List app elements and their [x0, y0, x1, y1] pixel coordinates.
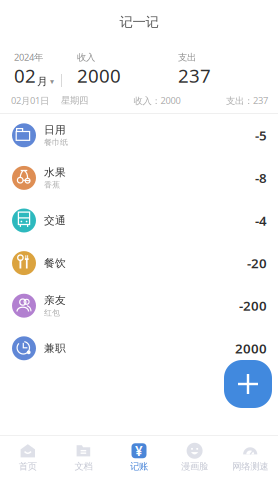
- staticText: 星期四: [61, 95, 88, 106]
- staticText: 红包: [44, 308, 60, 318]
- staticText: ¥: [135, 442, 143, 460]
- staticText: 237: [178, 63, 211, 88]
- staticText: 餐饮: [44, 256, 66, 270]
- staticText: -4: [255, 212, 267, 229]
- staticText: 02: [14, 63, 36, 88]
- staticText: 文档: [74, 461, 92, 472]
- button[interactable]: 餐饮: [0, 242, 278, 284]
- button[interactable]: 文档: [56, 435, 111, 480]
- staticText: -200: [239, 297, 267, 314]
- button[interactable]: 交通: [0, 199, 278, 242]
- button[interactable]: 亲友: [0, 284, 278, 327]
- staticText: 漫画脸: [181, 461, 208, 472]
- staticText: -20: [247, 254, 267, 272]
- staticText: 2024年: [14, 51, 43, 63]
- button[interactable]: 水果: [0, 157, 278, 199]
- staticText: 月: [37, 75, 48, 88]
- staticText: -5: [255, 126, 267, 144]
- staticText: 支出：237: [226, 94, 268, 107]
- button[interactable]: 漫画脸: [167, 435, 222, 480]
- staticText: 水果: [44, 166, 66, 179]
- button[interactable]: ¥: [111, 435, 167, 480]
- staticText: ▾: [50, 77, 54, 86]
- staticText: 2000: [235, 339, 267, 357]
- staticText: 首页: [19, 461, 37, 472]
- staticText: 02月01日: [11, 94, 49, 107]
- button[interactable]: 兼职: [0, 327, 278, 370]
- staticText: 记账: [130, 461, 148, 472]
- button[interactable]: 日用: [0, 114, 278, 157]
- staticText: 2000: [77, 63, 121, 88]
- staticText: 网络测速: [232, 461, 268, 472]
- staticText: 兼职: [44, 342, 66, 355]
- button[interactable]: 网络测速: [222, 435, 278, 480]
- staticText: 收入: [77, 52, 95, 63]
- staticText: 亲友: [44, 294, 66, 307]
- staticText: 支出: [178, 52, 196, 63]
- staticText: 收入：2000: [133, 94, 180, 107]
- staticText: 记一记: [119, 14, 158, 30]
- button[interactable]: 添加记账: [224, 360, 272, 408]
- staticText: 餐巾纸: [44, 137, 68, 147]
- staticText: 交通: [44, 214, 66, 227]
- staticText: 香蕉: [44, 180, 60, 190]
- staticText: -8: [255, 169, 267, 187]
- staticText: 日用: [44, 123, 66, 136]
- button[interactable]: 首页: [0, 435, 56, 480]
